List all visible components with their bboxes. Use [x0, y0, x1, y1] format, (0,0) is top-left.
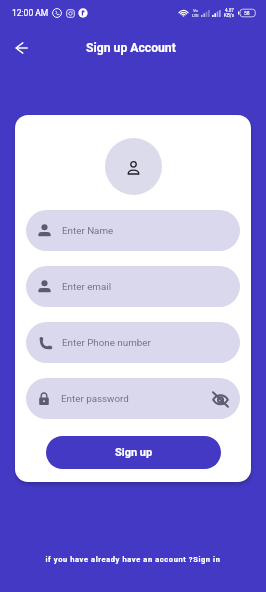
staticText: 12:00 AM [12, 8, 49, 18]
staticText: KB/s [224, 13, 235, 18]
button[interactable]: Enter Name [26, 210, 240, 251]
staticText: Sign up Account [86, 41, 176, 55]
button[interactable]: Enter password [26, 378, 240, 419]
staticText: Enter Phone number [62, 337, 151, 348]
staticText: 58 [244, 10, 250, 16]
button[interactable]: Show password [209, 388, 231, 410]
button[interactable]: Back [9, 36, 33, 60]
staticText: Vo [193, 8, 198, 13]
button[interactable]: Enter email [26, 266, 240, 307]
staticText: 4.07 [225, 8, 234, 13]
staticText: Enter password [61, 393, 129, 404]
button[interactable]: if you have already have an account ?Sig… [45, 555, 221, 564]
staticText: Sign up [115, 446, 153, 459]
button[interactable]: Sign up [46, 436, 221, 469]
button[interactable]: Enter Phone number [26, 322, 240, 363]
staticText: LTE [192, 13, 199, 18]
button[interactable]: Add profile photo [105, 138, 162, 195]
staticText: Enter Name [62, 225, 114, 236]
staticText: Enter email [62, 281, 112, 292]
